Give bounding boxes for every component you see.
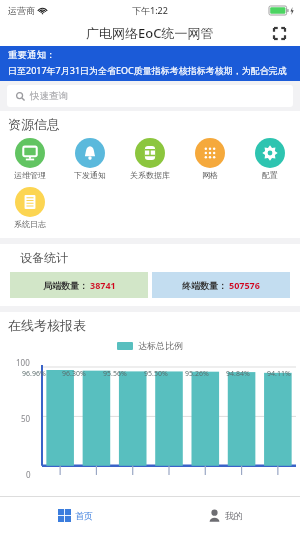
staticText: 94.84% [226,369,250,379]
staticText: 0 [26,469,31,480]
staticText: 局端数量： [43,280,88,291]
staticText: 终端数量： [182,280,227,291]
staticText: 重要通知： [8,49,56,61]
button[interactable]: 首页 [0,497,150,533]
staticText: 资源信息 [8,116,60,132]
staticText: 95.56% [103,369,127,379]
staticText: 下午1:22 [132,4,168,16]
button[interactable]: 网格 [180,136,240,182]
staticText: 96.30% [62,369,86,379]
staticText: 38741 [90,279,116,291]
button[interactable]: 快速查询 [7,85,293,107]
staticText: 96.96% [22,369,46,379]
button[interactable]: 我的 [150,497,300,533]
button[interactable]: 下发通知 [60,136,120,182]
button[interactable]: 重要通知： [0,46,300,81]
staticText: 下发通知 [74,170,106,180]
staticText: 日至2017年7月31日为全省EOC质量指标考核指标考核期，为配合完成 [8,64,287,76]
button[interactable]: 局端数量： [10,272,148,298]
staticText: 95.26% [185,369,209,379]
staticText: 94.11% [267,369,291,379]
button[interactable]: Fullscreen [268,22,290,44]
button[interactable]: 终端数量： [152,272,290,298]
staticText: 广电网络EoC统一网管 [86,24,214,42]
staticText: 系统日志 [14,219,46,229]
button[interactable]: 系统日志 [0,185,60,231]
staticText: 网格 [202,170,218,180]
staticText: 在线考核报表 [8,317,86,333]
staticText: 关系数据库 [130,170,170,180]
staticText: 配置 [262,170,278,180]
button[interactable]: 关系数据库 [120,136,180,182]
staticText: 50 [21,413,31,424]
staticText: 507576 [229,279,260,291]
staticText: 95.50% [144,369,168,379]
staticText: 达标总比例 [138,340,183,351]
staticText: 运营商 [8,5,35,16]
staticText: 100 [16,357,30,368]
staticText: 快速查询 [30,90,68,102]
staticText: 我的 [225,510,243,521]
staticText: 运维管理 [14,170,46,180]
staticText: 设备统计 [20,250,68,265]
button[interactable]: 运维管理 [0,136,60,182]
button[interactable]: 配置 [240,136,300,182]
staticText: 首页 [75,510,93,521]
